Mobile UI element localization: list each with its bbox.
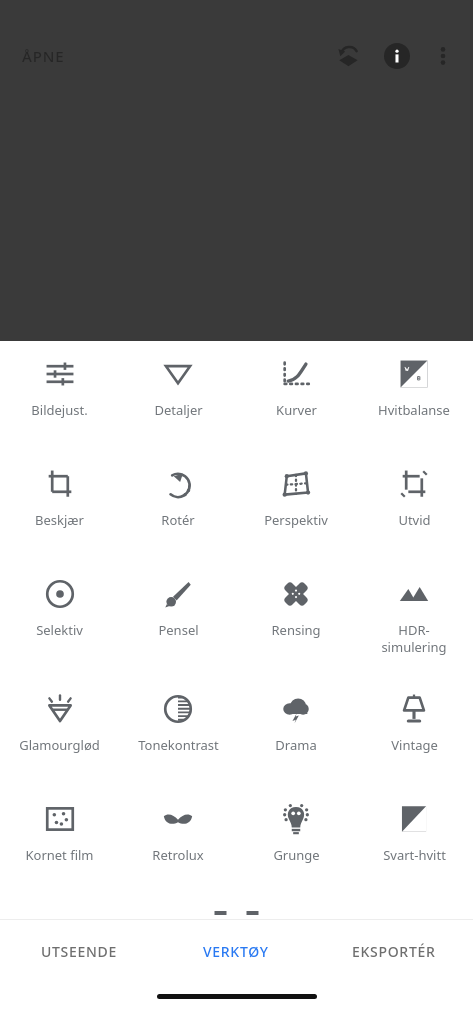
button[interactable]: Info [373,32,421,80]
staticText: Bildejust. [31,401,88,419]
button[interactable]: EKSPORTÉR [315,920,473,982]
button[interactable]: HDR- simulering [355,561,473,676]
staticText: Perspektiv [264,511,328,529]
button[interactable]: Tonekontrast [119,676,237,786]
button[interactable]: Vintage [355,676,473,786]
button[interactable]: Pensel [119,561,237,676]
staticText: Kornet film [25,846,94,864]
staticText: ÅPNE [22,46,65,66]
button[interactable]: Retrolux [119,786,237,896]
staticText: Rensing [271,621,321,639]
button[interactable]: Detaljer [119,341,237,451]
button[interactable]: Drama [237,676,355,786]
staticText: Vintage [391,736,438,754]
staticText: Pensel [158,621,199,639]
staticText: Tonekontrast [138,736,219,754]
staticText: Hvitbalanse [378,401,450,419]
staticText: Beskjær [35,511,84,529]
staticText: Rotér [161,511,195,529]
staticText: UTSEENDE [41,942,117,961]
staticText: Selektiv [36,621,83,639]
button[interactable]: Selektiv [0,561,119,676]
button[interactable]: ÅPNE [10,36,77,76]
button[interactable]: Perspektiv [237,451,355,561]
button[interactable]: Glamourglød [0,676,119,786]
button[interactable]: Svart-hvitt [355,786,473,896]
button[interactable]: Kurver [237,341,355,451]
button[interactable]: Angre stabel [325,32,373,80]
staticText: Drama [275,736,317,754]
button[interactable]: Kornet film [0,786,119,896]
staticText: Detaljer [154,401,203,419]
staticText: Utvid [398,511,431,529]
button[interactable]: Rensing [237,561,355,676]
staticText: Kurver [276,401,317,419]
staticText: Retrolux [152,846,204,864]
staticText: Svart-hvitt [383,846,446,864]
staticText: EKSPORTÉR [352,942,436,961]
staticText: Grunge [273,846,320,864]
staticText: HDR- simulering [381,621,447,656]
button[interactable]: Utvid [355,451,473,561]
button[interactable]: Bildejust. [0,341,119,451]
button[interactable]: Hvitbalanse [355,341,473,451]
button[interactable]: Rotér [119,451,237,561]
staticText: VERKTØY [203,942,269,961]
button[interactable]: Beskjær [0,451,119,561]
button[interactable]: Grunge [237,786,355,896]
staticText: Glamourglød [19,736,100,754]
button[interactable]: UTSEENDE [0,920,157,982]
button[interactable]: VERKTØY [157,920,315,982]
